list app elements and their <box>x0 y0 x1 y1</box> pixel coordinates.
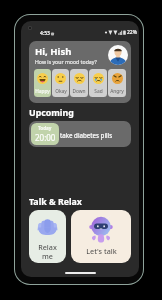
button[interactable]: Angry <box>108 69 126 97</box>
staticText: Let's talk <box>86 246 117 256</box>
button[interactable]: Profile <box>108 45 128 65</box>
staticText: Down <box>72 88 86 95</box>
staticText: 22% <box>127 29 137 36</box>
staticText: 4:53 <box>40 30 50 37</box>
button[interactable]: Happy <box>34 69 51 97</box>
button[interactable]: Sad <box>89 69 107 97</box>
staticText: Talk & Relax <box>29 196 82 208</box>
staticText: Upcoming <box>29 107 74 119</box>
staticText: How is your mood today? <box>35 58 97 65</box>
staticText: Sad <box>94 88 103 95</box>
button[interactable]: Relax me <box>29 210 66 263</box>
button[interactable]: Let's talk <box>71 210 131 263</box>
staticText: take diabetes pills <box>60 131 113 139</box>
staticText: Angry <box>110 88 124 95</box>
button[interactable]: Down <box>70 69 88 97</box>
button[interactable]: Hi, Hish <box>29 41 131 103</box>
staticText: Hi, Hish <box>35 45 72 58</box>
button[interactable]: Today <box>29 121 131 147</box>
other: Home <box>65 272 96 274</box>
staticText: Relax me <box>38 242 57 260</box>
staticText: Okay <box>55 88 67 95</box>
staticText: Happy <box>35 88 50 95</box>
staticText: Today <box>38 125 52 131</box>
button[interactable]: Okay <box>52 69 69 97</box>
staticText: 20:00 <box>35 132 56 143</box>
